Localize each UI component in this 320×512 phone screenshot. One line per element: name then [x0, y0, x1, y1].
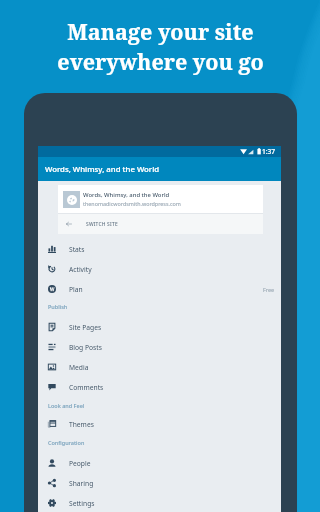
- button[interactable]: Plan: [38, 279, 281, 299]
- button[interactable]: Settings: [38, 493, 281, 512]
- button[interactable]: Comments: [38, 377, 281, 397]
- button[interactable]: Stats: [38, 239, 281, 259]
- staticText: Themes: [69, 420, 94, 429]
- staticText: Comments: [69, 383, 104, 392]
- staticText: Activity: [69, 265, 92, 274]
- button[interactable]: Media: [38, 357, 281, 377]
- staticText: Publish: [48, 303, 68, 310]
- staticText: thenomadicwordsmith.wordpress.com: [83, 200, 181, 207]
- staticText: Manage your site everywhere you go: [57, 17, 264, 76]
- button[interactable]: SWITCH SITE: [58, 214, 263, 234]
- staticText: Look and Feel: [48, 402, 85, 409]
- button[interactable]: People: [38, 453, 281, 473]
- staticText: Words, Whimsy, and the World: [45, 164, 160, 175]
- staticText: SWITCH SITE: [86, 221, 118, 228]
- staticText: Configuration: [48, 439, 85, 446]
- button[interactable]: Blog Posts: [38, 337, 281, 357]
- button[interactable]: Activity: [38, 259, 281, 279]
- staticText: Free: [263, 286, 275, 293]
- staticText: Media: [69, 363, 89, 372]
- staticText: Blog Posts: [69, 343, 102, 352]
- staticText: 1:37: [262, 147, 276, 156]
- button[interactable]: Sharing: [38, 473, 281, 493]
- staticText: Words, Whimsy, and the World: [83, 191, 170, 199]
- staticText: Stats: [69, 245, 85, 254]
- staticText: Site Pages: [69, 323, 102, 332]
- button[interactable]: Site Pages: [38, 317, 281, 337]
- staticText: Sharing: [69, 479, 94, 488]
- staticText: Settings: [69, 499, 95, 508]
- staticText: Plan: [69, 285, 83, 294]
- button[interactable]: Words, Whimsy, and the World: [58, 185, 263, 234]
- staticText: People: [69, 459, 91, 468]
- button[interactable]: Words, Whimsy, and the World: [38, 157, 281, 181]
- button[interactable]: Themes: [38, 414, 281, 434]
